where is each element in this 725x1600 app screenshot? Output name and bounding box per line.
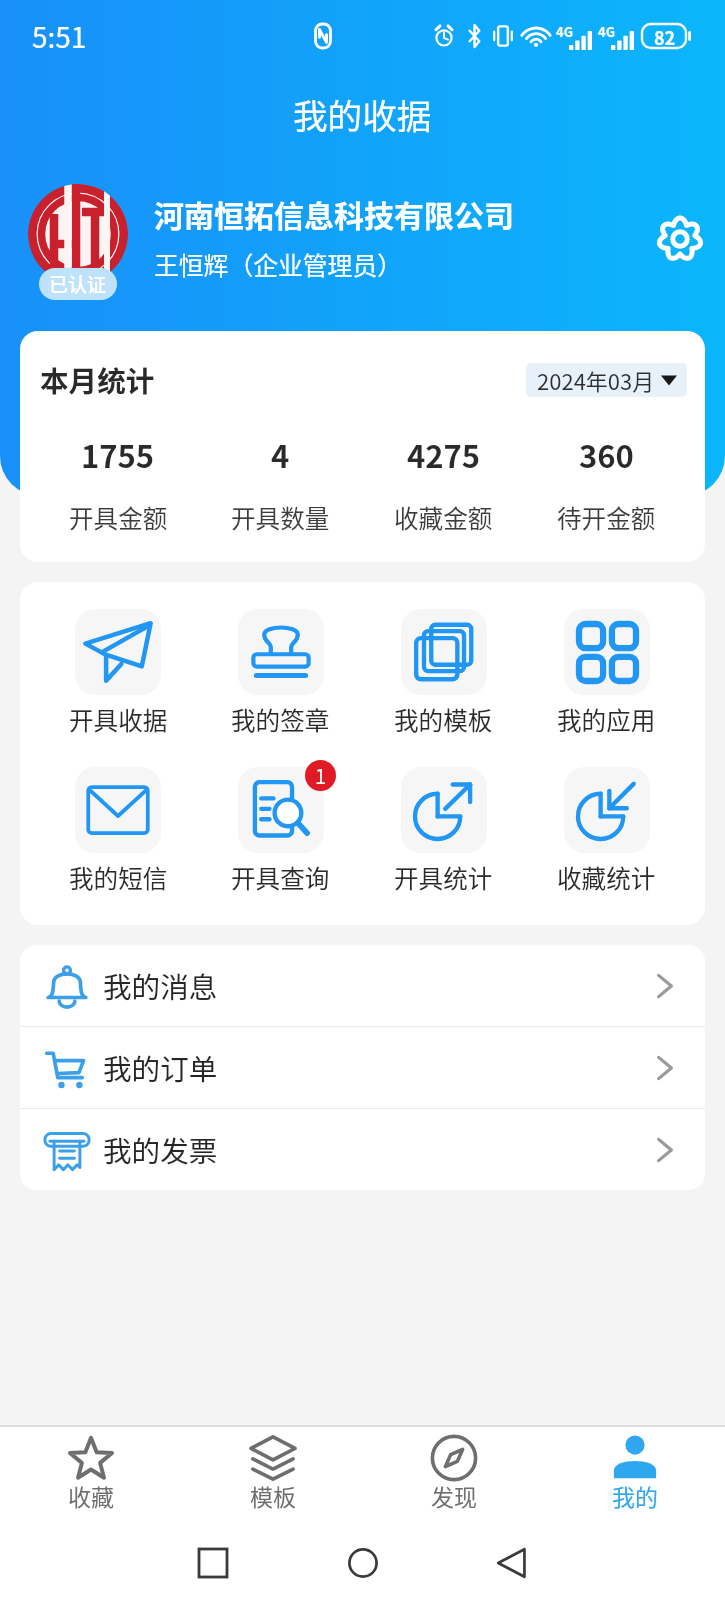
staticText: 2024年03月 xyxy=(537,364,655,396)
staticText: 我的模板 xyxy=(394,701,493,735)
button[interactable]: Recents xyxy=(173,1525,253,1600)
staticText: 收藏金额 xyxy=(394,499,493,535)
button[interactable]: 2024年03月 xyxy=(526,363,687,397)
button[interactable]: 我的消息 xyxy=(20,945,705,1026)
staticText: 模板 xyxy=(250,1479,296,1511)
staticText: 已认证 xyxy=(49,270,107,298)
staticText: 我的应用 xyxy=(557,701,656,735)
button[interactable]: Back xyxy=(471,1525,551,1600)
staticText: 开具查询 xyxy=(231,859,330,893)
button[interactable]: 模板 xyxy=(182,1427,363,1525)
staticText: 我的收据 xyxy=(293,89,432,139)
staticText: 我的短信 xyxy=(69,859,168,893)
button[interactable]: 开具统计 xyxy=(362,767,525,893)
staticText: 5:51 xyxy=(32,16,87,57)
button[interactable]: 我的订单 xyxy=(20,1027,705,1108)
staticText: 开具金额 xyxy=(69,499,168,535)
staticText: 我的签章 xyxy=(231,701,330,735)
button[interactable]: 我的发票 xyxy=(20,1109,705,1190)
button[interactable]: 收藏 xyxy=(0,1427,182,1525)
staticText: 360 xyxy=(579,432,634,477)
staticText: 我的 xyxy=(612,1479,658,1511)
staticText: 4G xyxy=(598,22,615,41)
button[interactable]: Settings xyxy=(646,205,714,273)
button[interactable]: 发现 xyxy=(363,1427,544,1525)
staticText: 4 xyxy=(271,432,290,477)
staticText: 我的消息 xyxy=(103,965,218,1006)
staticText: 4G xyxy=(556,22,573,41)
staticText: 开具收据 xyxy=(69,701,168,735)
staticText: 开具数量 xyxy=(231,499,330,535)
button[interactable]: 我的模板 xyxy=(362,609,525,735)
button[interactable]: 我的短信 xyxy=(37,767,199,893)
staticText: 王恒辉（企业管理员） xyxy=(154,246,402,282)
staticText: 发现 xyxy=(431,1479,477,1511)
staticText: 收藏 xyxy=(68,1479,114,1511)
staticText: 河南恒拓信息科技有限公司 xyxy=(154,192,514,235)
staticText: 开具统计 xyxy=(394,859,493,893)
button[interactable]: 我的 xyxy=(544,1427,725,1525)
staticText: 待开金额 xyxy=(557,499,656,535)
staticText: 1755 xyxy=(81,432,155,477)
button[interactable]: 我的签章 xyxy=(199,609,362,735)
staticText: 我的发票 xyxy=(103,1129,218,1170)
staticText: 4275 xyxy=(407,432,481,477)
staticText: 1 xyxy=(315,761,327,790)
button[interactable]: 1 xyxy=(199,767,362,893)
staticText: 82 xyxy=(654,24,676,48)
button[interactable]: 开具收据 xyxy=(37,609,199,735)
button[interactable]: 我的应用 xyxy=(525,609,688,735)
button[interactable]: Home xyxy=(323,1525,403,1600)
staticText: 我的订单 xyxy=(103,1047,218,1088)
staticText: 本月统计 xyxy=(40,359,155,400)
button[interactable]: 收藏统计 xyxy=(525,767,688,893)
staticText: 收藏统计 xyxy=(557,859,656,893)
